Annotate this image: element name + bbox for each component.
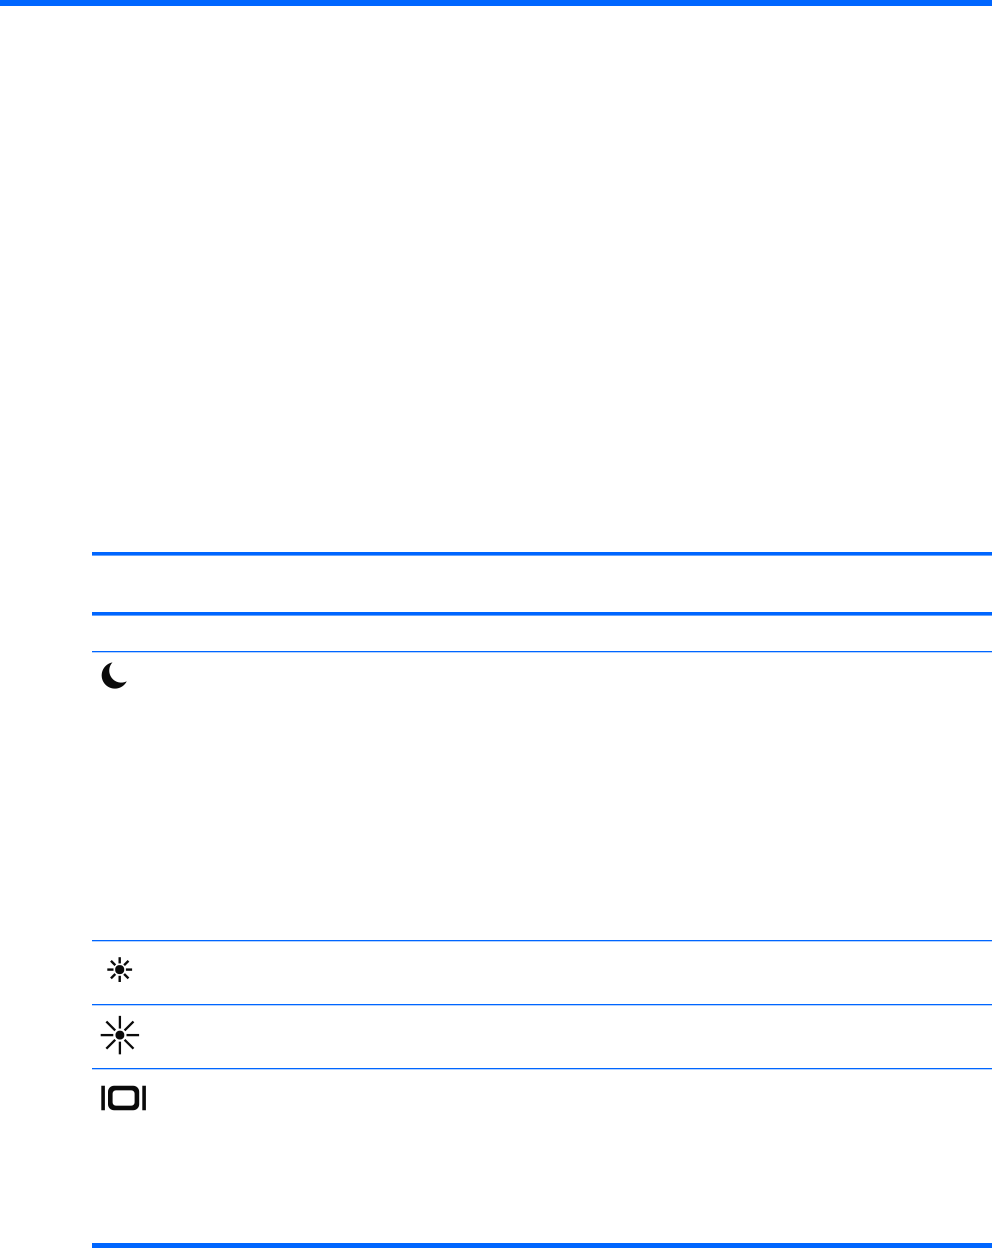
button[interactable]: Sleep	[92, 652, 992, 940]
button[interactable]: Switch screen image	[92, 1069, 992, 1242]
button[interactable]: Decrease screen brightness	[92, 941, 992, 1004]
button[interactable]: Increase screen brightness	[92, 1005, 992, 1068]
